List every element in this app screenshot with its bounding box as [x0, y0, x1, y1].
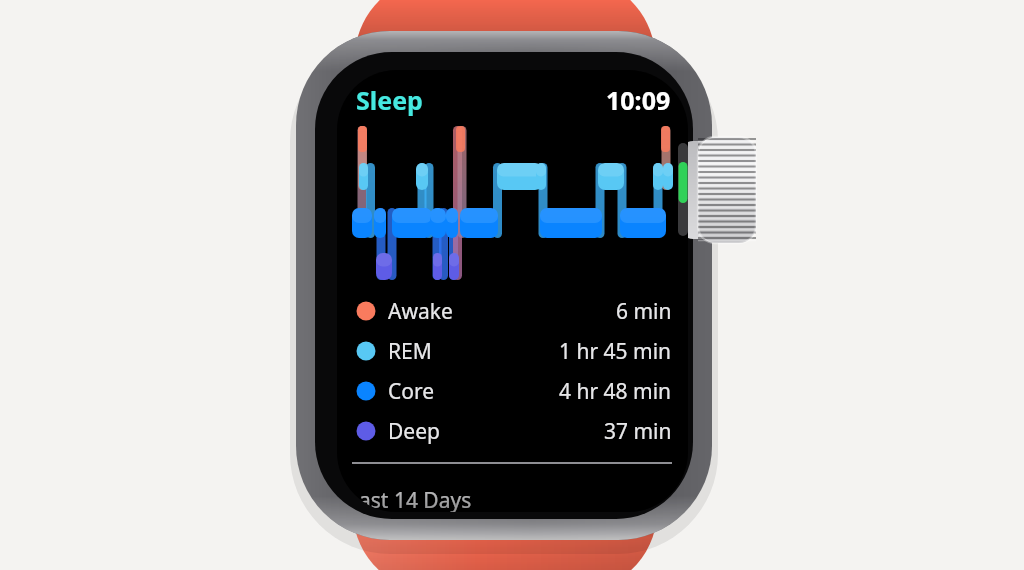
- button[interactable]: Apple Watch showing Sleep app: [0, 0, 1024, 570]
